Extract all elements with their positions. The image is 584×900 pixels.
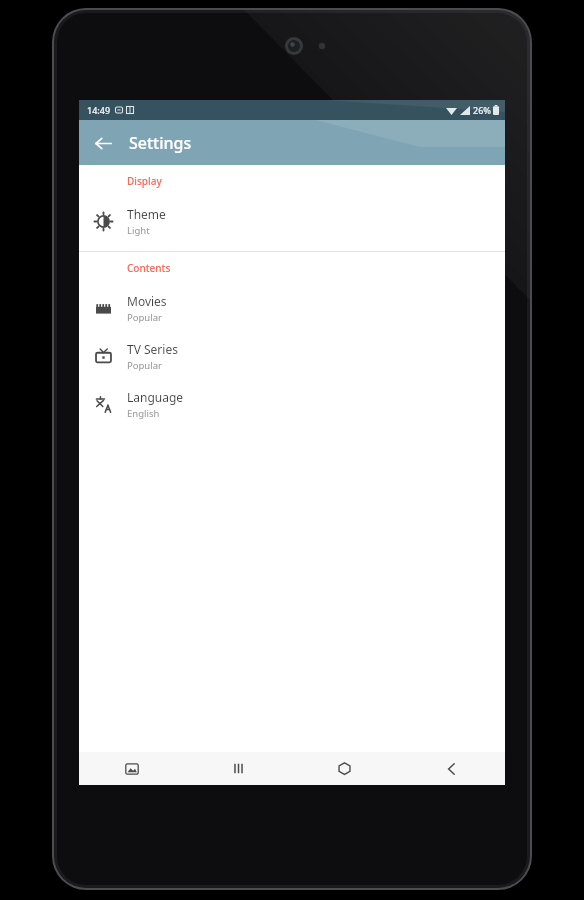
staticText: TV Series xyxy=(127,341,178,357)
button[interactable]: Back xyxy=(398,752,505,785)
staticText: Settings xyxy=(129,132,192,154)
staticText: 14:49 xyxy=(87,104,111,116)
staticText: Popular xyxy=(127,311,162,324)
staticText: 26% xyxy=(473,104,491,116)
staticText: English xyxy=(127,407,160,420)
staticText: Popular xyxy=(127,359,162,372)
button[interactable]: Theme xyxy=(79,197,505,245)
button[interactable]: Home xyxy=(291,752,398,785)
staticText: Theme xyxy=(127,206,166,222)
button[interactable]: Recent apps xyxy=(185,752,291,785)
staticText: Display xyxy=(127,174,162,188)
staticText: Movies xyxy=(127,293,167,309)
button[interactable]: Screenshot xyxy=(79,752,185,785)
staticText: Contents xyxy=(127,261,171,275)
button[interactable]: Back xyxy=(85,125,121,161)
button[interactable]: Language xyxy=(79,380,505,428)
staticText: Language xyxy=(127,389,184,405)
staticText: Light xyxy=(127,224,150,237)
button[interactable]: TV Series xyxy=(79,332,505,380)
button[interactable]: Movies xyxy=(79,284,505,332)
